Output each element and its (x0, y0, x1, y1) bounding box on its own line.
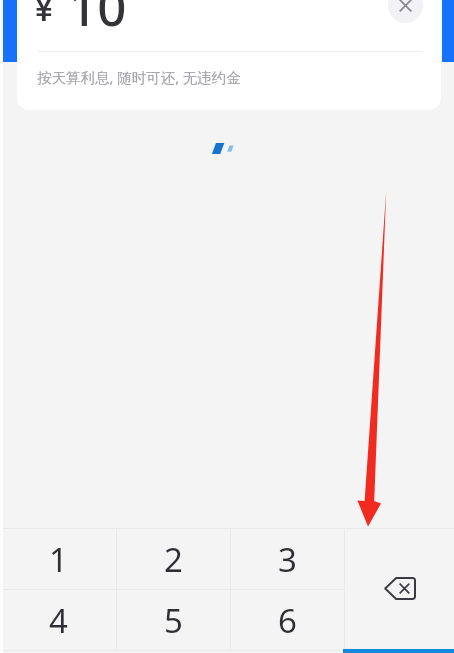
staticText: 3 (278, 537, 297, 582)
staticText: 5 (164, 598, 183, 643)
staticText: 10 (68, 0, 127, 40)
button[interactable]: 1 (0, 529, 116, 589)
button[interactable]: Backspace (346, 529, 454, 648)
staticText: 4 (49, 598, 68, 643)
button[interactable]: 6 (231, 590, 344, 650)
staticText: 1 (49, 537, 68, 582)
button[interactable]: 5 (117, 590, 230, 650)
button[interactable]: 3 (231, 529, 344, 589)
staticText: 按天算利息, 随时可还, 无违约金 (37, 67, 241, 87)
button[interactable]: 2 (117, 529, 230, 589)
button[interactable]: 4 (0, 590, 116, 650)
button[interactable]: Close (388, 0, 423, 23)
staticText: 2 (164, 537, 183, 582)
staticText: 6 (278, 598, 297, 643)
staticText: ¥ (33, 0, 55, 32)
